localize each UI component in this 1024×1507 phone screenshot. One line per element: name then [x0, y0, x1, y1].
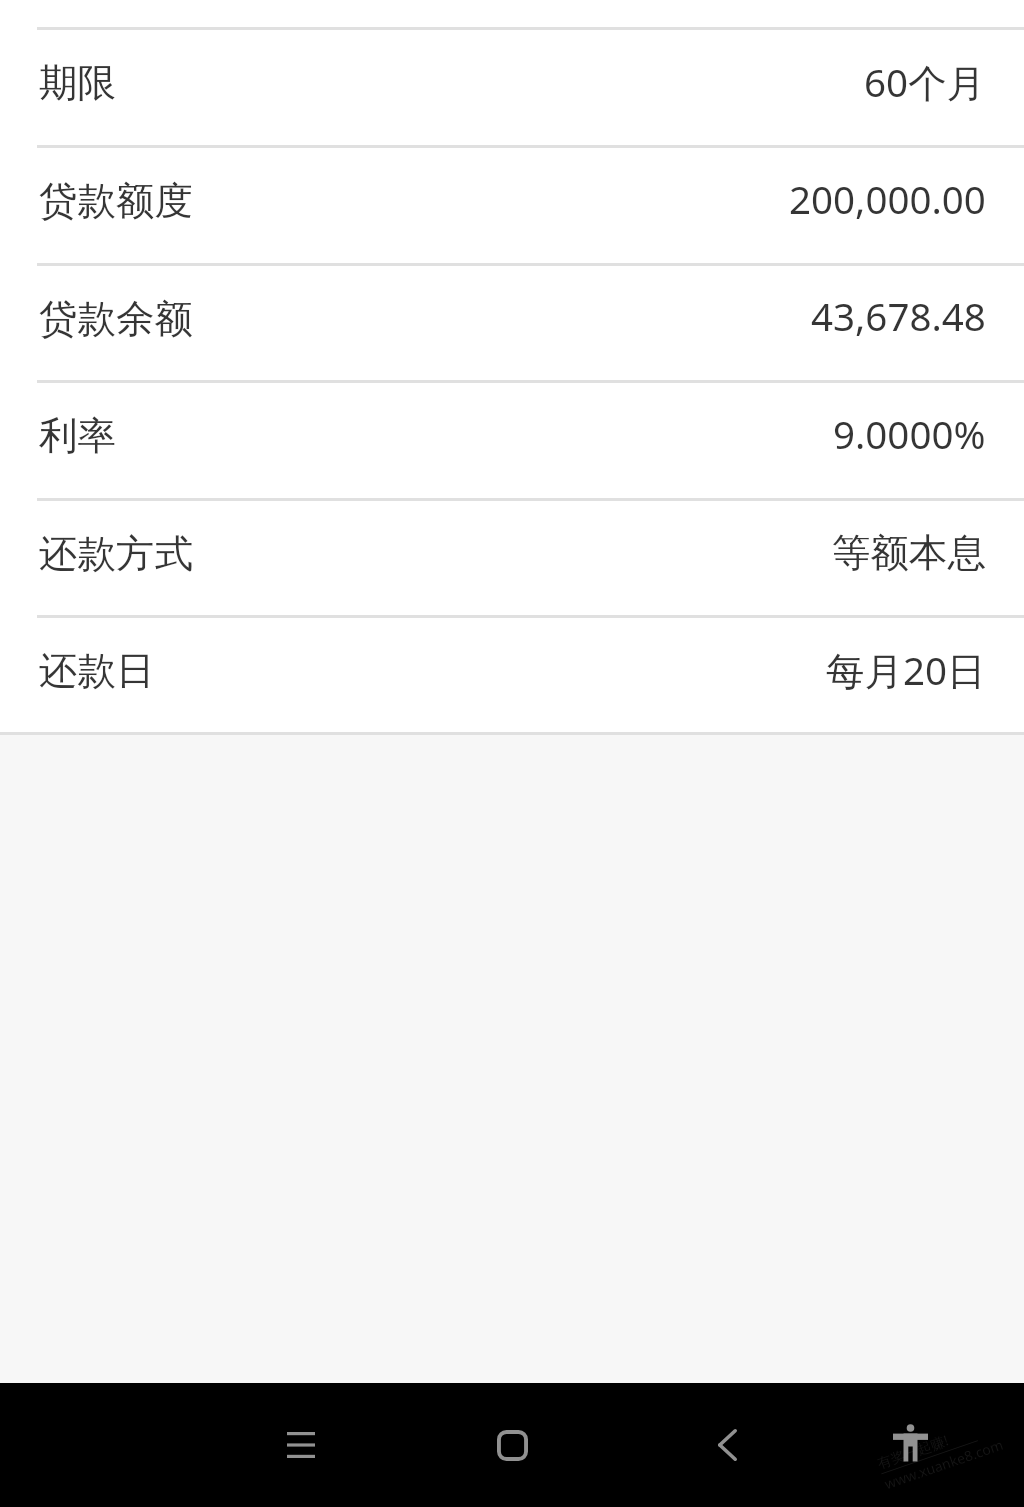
staticText: 等额本息 — [832, 529, 986, 578]
button[interactable]: Recent apps — [251, 1395, 351, 1495]
staticText: 期限 — [39, 59, 116, 108]
staticText: 利率 — [39, 412, 116, 461]
staticText: 60个月 — [864, 56, 986, 109]
staticText: 还款日 — [39, 647, 155, 696]
button[interactable]: 期限 — [0, 30, 1024, 145]
button[interactable]: 贷款额度 — [0, 148, 1024, 263]
button[interactable]: Home — [462, 1395, 562, 1495]
button[interactable]: Back — [677, 1395, 777, 1495]
staticText: 贷款额度 — [39, 177, 193, 226]
staticText: 贷款余额 — [39, 295, 193, 344]
staticText: 43,678.48 — [811, 290, 986, 342]
button[interactable]: 贷款余额 — [0, 266, 1024, 380]
button[interactable]: 还款日 — [0, 618, 1024, 732]
staticText: 每月20日 — [826, 644, 986, 697]
staticText: 9.0000% — [833, 408, 986, 460]
staticText: 200,000.00 — [789, 173, 986, 225]
button[interactable]: 还款方式 — [0, 501, 1024, 615]
staticText: 还款方式 — [39, 530, 193, 579]
button[interactable]: 利率 — [0, 383, 1024, 498]
staticText: 有奖一起赚! — [875, 1430, 951, 1472]
staticText: www.xuanke8.com — [882, 1435, 1006, 1493]
button[interactable]: Accessibility — [860, 1393, 960, 1493]
